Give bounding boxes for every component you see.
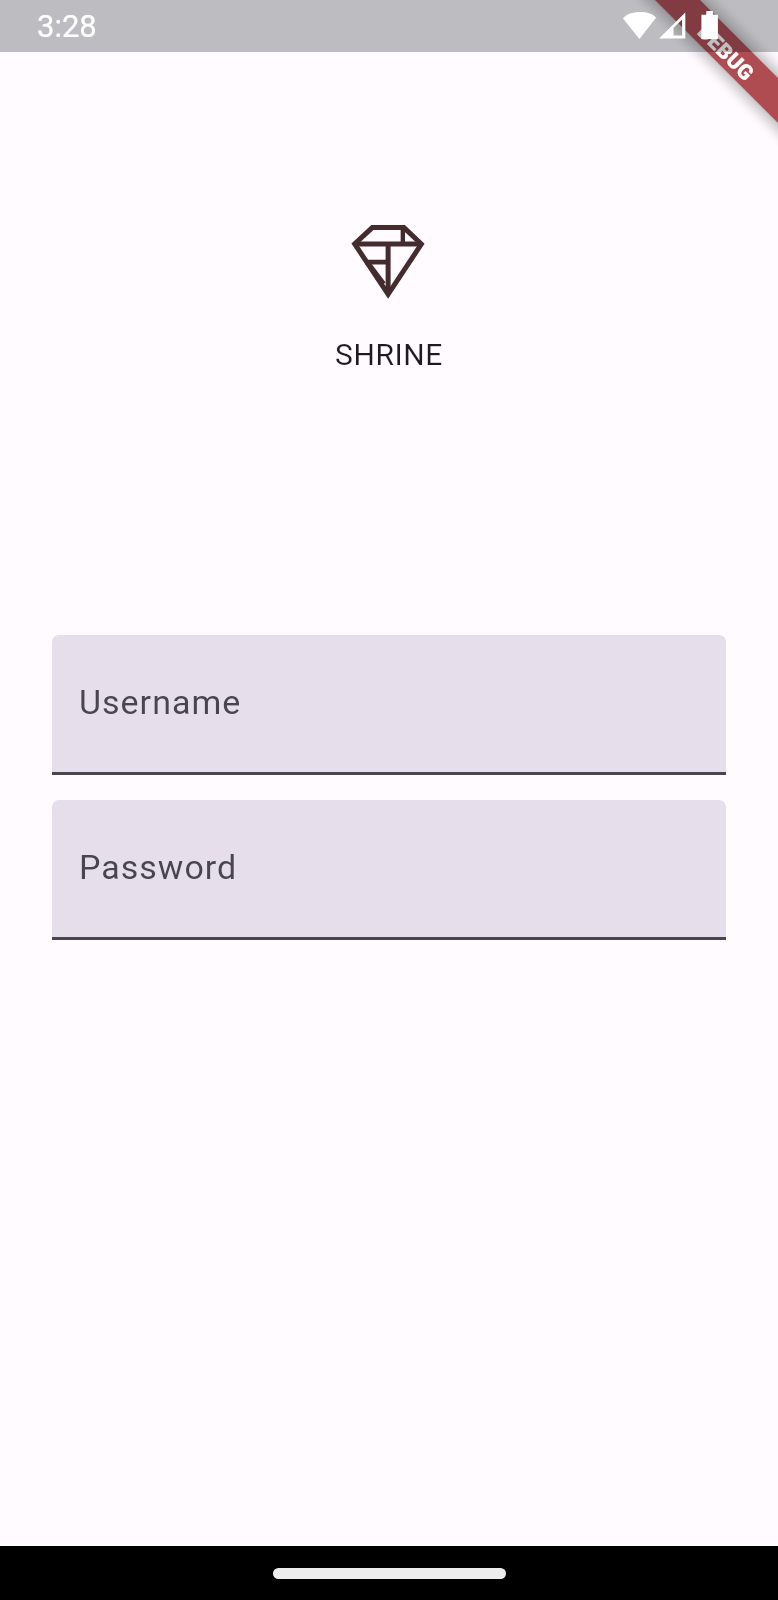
button[interactable]: Username bbox=[52, 635, 726, 775]
staticText: Username bbox=[79, 682, 242, 722]
other: Mobile signal bbox=[657, 10, 688, 41]
staticText: Password bbox=[79, 847, 238, 887]
staticText: SHRINE bbox=[335, 337, 443, 372]
other: Battery bbox=[701, 11, 719, 40]
staticText: 3:28 bbox=[37, 8, 97, 44]
button[interactable]: Password bbox=[52, 800, 726, 940]
staticText: DEBUG bbox=[692, 20, 759, 87]
other: Wi-Fi bbox=[623, 10, 656, 39]
